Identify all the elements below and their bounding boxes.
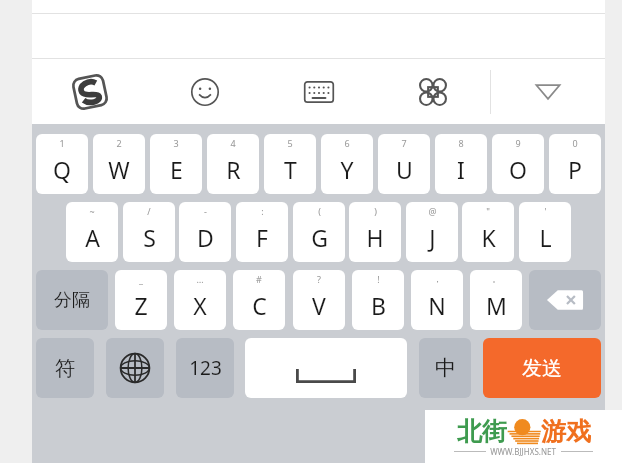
staticText: A xyxy=(85,222,100,253)
button[interactable]: ) xyxy=(349,202,401,262)
button[interactable]: ? xyxy=(293,270,345,330)
button[interactable]: 中 xyxy=(419,338,471,398)
staticText: K xyxy=(481,222,496,253)
button[interactable]: / xyxy=(123,202,175,262)
staticText: 6 xyxy=(344,137,350,149)
button[interactable]: _ xyxy=(115,270,167,330)
staticText: … xyxy=(196,273,204,285)
button[interactable]: Space xyxy=(245,338,407,398)
staticText: 5 xyxy=(287,137,293,149)
staticText: Y xyxy=(340,154,354,185)
button[interactable]: Backspace xyxy=(529,270,601,330)
staticText: - xyxy=(204,205,207,217)
staticText: L xyxy=(539,222,552,253)
staticText: ! xyxy=(377,273,380,285)
staticText: " xyxy=(486,205,490,217)
button[interactable]: ' xyxy=(519,202,571,262)
button[interactable]: " xyxy=(462,202,514,262)
staticText: J xyxy=(429,222,436,253)
button[interactable]: 5 xyxy=(264,134,316,194)
staticText: X xyxy=(193,290,207,321)
staticText: 中 xyxy=(435,355,456,381)
staticText: H xyxy=(366,222,384,253)
staticText: 3 xyxy=(173,137,179,149)
button[interactable]: 123 xyxy=(176,338,234,398)
staticText: I xyxy=(457,154,465,185)
button[interactable]: 3 xyxy=(150,134,202,194)
staticText: / xyxy=(147,205,151,217)
button[interactable]: Emoji xyxy=(147,59,262,124)
staticText: WWW.BJJHXS.NET xyxy=(486,446,561,457)
staticText: 1 xyxy=(59,137,65,149)
staticText: 4 xyxy=(230,137,236,149)
staticText: G xyxy=(311,222,328,253)
staticText: 123 xyxy=(189,355,222,381)
staticText: Z xyxy=(134,290,148,321)
staticText: W xyxy=(108,154,130,185)
staticText: V xyxy=(312,290,326,321)
staticText: 符 xyxy=(55,356,75,381)
button[interactable]: Hide keyboard xyxy=(491,59,605,124)
button[interactable]: Keyboard layout xyxy=(262,59,376,124)
staticText: 0 xyxy=(572,137,578,149)
button[interactable]: : xyxy=(236,202,288,262)
button[interactable]: Switch language xyxy=(106,338,164,398)
button[interactable]: 2 xyxy=(93,134,145,194)
staticText: Q xyxy=(53,154,71,185)
staticText: O xyxy=(509,154,527,185)
button[interactable]: - xyxy=(179,202,231,262)
button[interactable]: More functions xyxy=(376,59,490,124)
staticText: M xyxy=(486,290,507,321)
staticText: : xyxy=(261,205,264,217)
staticText: F xyxy=(256,222,268,253)
button[interactable]: 发送 xyxy=(483,338,601,398)
button[interactable]: 8 xyxy=(435,134,487,194)
staticText: # xyxy=(256,273,262,285)
staticText: ， xyxy=(433,273,442,284)
staticText: C xyxy=(252,290,267,321)
button[interactable]: 0 xyxy=(549,134,601,194)
staticText: P xyxy=(568,154,582,185)
staticText: 8 xyxy=(458,137,464,149)
staticText: ' xyxy=(544,205,547,217)
staticText: E xyxy=(170,154,183,185)
button[interactable]: 分隔 xyxy=(36,270,108,330)
staticText: D xyxy=(197,222,214,253)
staticText: T xyxy=(284,154,297,185)
button[interactable]: 1 xyxy=(36,134,88,194)
staticText: 游戏 xyxy=(541,416,591,447)
button[interactable]: ~ xyxy=(66,202,118,262)
staticText: S xyxy=(143,222,156,253)
button[interactable]: ( xyxy=(293,202,345,262)
button[interactable]: 符 xyxy=(36,338,94,398)
staticText: 7 xyxy=(401,137,407,149)
staticText: 发送 xyxy=(522,356,562,381)
staticText: 北街 xyxy=(457,416,507,447)
button[interactable]: 7 xyxy=(378,134,430,194)
button[interactable]: 。 xyxy=(470,270,522,330)
staticText: N xyxy=(428,290,446,321)
staticText: 分隔 xyxy=(54,289,90,312)
staticText: R xyxy=(226,154,241,185)
staticText: ) xyxy=(374,205,377,217)
staticText: B xyxy=(371,290,386,321)
staticText: @ xyxy=(428,205,437,217)
button[interactable]: 9 xyxy=(492,134,544,194)
button[interactable]: ， xyxy=(411,270,463,330)
button[interactable]: 6 xyxy=(321,134,373,194)
staticText: ~ xyxy=(89,205,95,217)
button[interactable]: @ xyxy=(406,202,458,262)
button[interactable]: # xyxy=(233,270,285,330)
staticText: _ xyxy=(139,273,143,285)
button[interactable]: 4 xyxy=(207,134,259,194)
staticText: U xyxy=(396,154,413,185)
button[interactable]: … xyxy=(174,270,226,330)
button[interactable]: Sogou input xyxy=(32,59,147,124)
button[interactable]: ! xyxy=(352,270,404,330)
staticText: 。 xyxy=(492,273,501,284)
staticText: ( xyxy=(318,205,321,217)
staticText: ? xyxy=(317,273,321,285)
staticText: 9 xyxy=(515,137,521,149)
staticText: 2 xyxy=(116,137,122,149)
